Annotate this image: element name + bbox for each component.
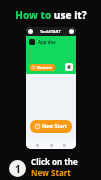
button[interactable]: Restart xyxy=(29,64,55,71)
button[interactable]: New Start xyxy=(30,120,72,133)
staticText: How to use it? xyxy=(15,8,87,22)
staticText: Restart xyxy=(37,65,52,70)
staticText: App dev xyxy=(38,39,56,45)
button[interactable]: Settings xyxy=(69,29,74,34)
button[interactable]: Menu xyxy=(28,29,33,34)
staticText: Click on the xyxy=(31,156,78,167)
staticText: 1 xyxy=(15,162,21,176)
staticText: New Start button. xyxy=(31,167,97,180)
staticText: New Start xyxy=(42,123,67,130)
button[interactable]: Delete xyxy=(65,63,73,71)
staticText: TaskSTART xyxy=(40,29,61,34)
